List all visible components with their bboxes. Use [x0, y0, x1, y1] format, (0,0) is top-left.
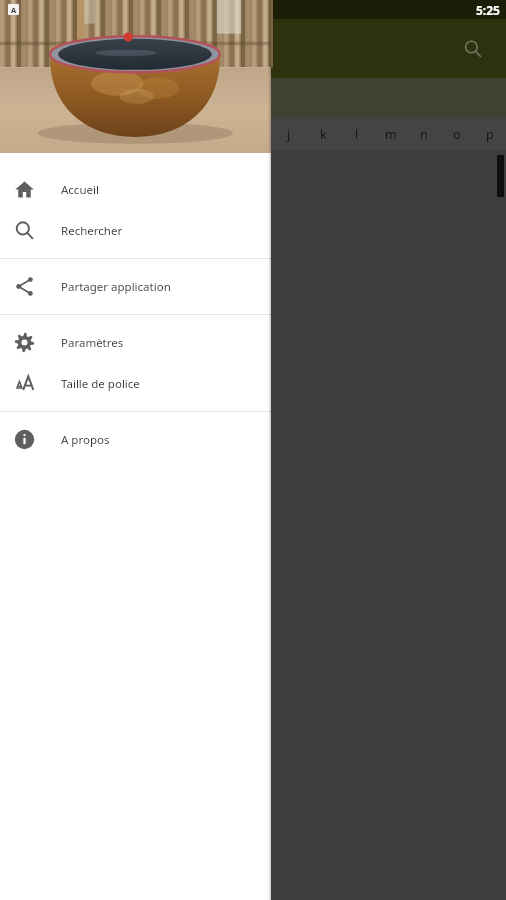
staticText: Rechercher: [61, 223, 123, 239]
button[interactable]: Taille de police: [0, 363, 271, 404]
staticText: l: [355, 126, 359, 143]
button[interactable]: p: [473, 118, 506, 151]
staticText: A propos: [61, 432, 110, 448]
staticText: o: [453, 126, 461, 143]
staticText: Paramètres: [61, 335, 124, 351]
button[interactable]: Partager application: [0, 266, 271, 307]
staticText: j: [287, 126, 291, 143]
button[interactable]: [0, 0, 271, 153]
button[interactable]: m: [374, 118, 407, 151]
button[interactable]: Paramètres: [0, 322, 271, 363]
button[interactable]: ENGLISH: [0, 78, 134, 118]
staticText: A: [11, 5, 17, 15]
button[interactable]: Accueil: [0, 169, 271, 210]
staticText: 5:25: [476, 2, 500, 18]
button[interactable]: j: [272, 118, 306, 151]
staticText: Accueil: [61, 182, 99, 198]
staticText: m: [385, 126, 397, 143]
staticText: n: [420, 126, 428, 143]
button[interactable]: Rechercher: [0, 210, 271, 251]
staticText: Partager application: [61, 279, 171, 295]
staticText: Taille de police: [61, 376, 140, 392]
button[interactable]: n: [407, 118, 440, 151]
button[interactable]: o: [440, 118, 473, 151]
button[interactable]: A propos: [0, 419, 271, 460]
staticText: p: [486, 126, 494, 143]
button[interactable]: Search: [452, 28, 494, 70]
staticText: k: [320, 126, 327, 143]
button[interactable]: l: [340, 118, 374, 151]
button[interactable]: k: [306, 118, 340, 151]
staticText: ENGLISH: [39, 90, 95, 106]
